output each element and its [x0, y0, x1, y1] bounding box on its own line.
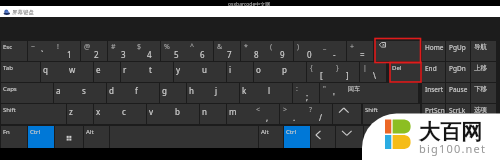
- button[interactable]: n: [200, 104, 226, 124]
- button[interactable]: 导航: [471, 41, 496, 61]
- button[interactable]: c: [120, 104, 146, 124]
- staticText: &: [217, 42, 223, 52]
- button[interactable]: Fn: [1, 126, 27, 148]
- button[interactable]: y: [174, 62, 200, 82]
- button[interactable]: ScrLk: [446, 104, 470, 124]
- button[interactable]: PgDn: [446, 62, 470, 82]
- staticText: Del: [392, 64, 402, 72]
- button[interactable]: %: [161, 41, 187, 61]
- button[interactable]: @: [81, 41, 107, 61]
- staticText: _: [323, 42, 327, 52]
- button[interactable]: Shift: [363, 104, 420, 124]
- button[interactable]: up: [333, 104, 361, 124]
- button[interactable]: End: [422, 62, 445, 82]
- button[interactable]: Alt: [259, 126, 283, 148]
- button[interactable]: {: [307, 62, 333, 82]
- staticText: h: [189, 85, 194, 96]
- button[interactable]: Caps: [1, 83, 53, 103]
- button[interactable]: _: [320, 41, 346, 61]
- staticText: osxbarcode中文网: [228, 1, 271, 8]
- button[interactable]: 上移: [471, 62, 496, 82]
- button[interactable]: *: [241, 41, 267, 61]
- staticText: ,: [266, 112, 269, 123]
- staticText: Esc: [3, 43, 13, 51]
- button[interactable]: +: [347, 41, 373, 61]
- button[interactable]: win: [55, 126, 83, 148]
- button[interactable]: #: [108, 41, 134, 61]
- button[interactable]: x: [94, 104, 120, 124]
- staticText: `: [41, 49, 44, 60]
- staticText: Insert: [425, 85, 444, 94]
- button[interactable]: &: [214, 41, 240, 61]
- button[interactable]: 回车: [346, 83, 418, 103]
- button[interactable]: left: [311, 126, 335, 148]
- button[interactable]: Alt: [84, 126, 109, 148]
- button[interactable]: m: [227, 104, 253, 124]
- button[interactable]: |: [360, 62, 386, 82]
- staticText: b: [175, 106, 180, 117]
- button[interactable]: l: [266, 83, 292, 103]
- button[interactable]: z: [67, 104, 93, 124]
- button[interactable]: u: [200, 62, 226, 82]
- button[interactable]: :: [293, 83, 319, 103]
- button[interactable]: t: [147, 62, 173, 82]
- button[interactable]: v: [147, 104, 173, 124]
- staticText: s: [82, 85, 86, 96]
- button[interactable]: ^: [187, 41, 213, 61]
- button[interactable]: Home: [422, 41, 445, 61]
- button[interactable]: down: [336, 126, 363, 148]
- button[interactable]: a: [54, 83, 80, 103]
- button[interactable]: b: [173, 104, 199, 124]
- staticText: Ctrl: [286, 128, 296, 136]
- button[interactable]: $: [134, 41, 160, 61]
- button[interactable]: g: [160, 83, 186, 103]
- button[interactable]: Shift: [1, 104, 66, 124]
- button[interactable]: }: [333, 62, 359, 82]
- staticText: u: [202, 64, 207, 75]
- button[interactable]: PrtScn: [422, 104, 445, 124]
- button[interactable]: o: [254, 62, 280, 82]
- button[interactable]: s: [80, 83, 106, 103]
- button[interactable]: Ctrl: [284, 126, 310, 148]
- button[interactable]: e: [94, 62, 120, 82]
- button[interactable]: q: [41, 62, 67, 82]
- button[interactable]: ?: [306, 104, 332, 124]
- button[interactable]: Esc: [1, 41, 27, 61]
- button[interactable]: ~: [28, 41, 54, 61]
- button[interactable]: backspace: [375, 41, 420, 61]
- staticText: x: [96, 106, 101, 117]
- staticText: z: [69, 106, 73, 117]
- button[interactable]: Ctrl: [28, 126, 54, 148]
- button[interactable]: Del: [390, 62, 420, 82]
- button[interactable]: d: [107, 83, 133, 103]
- button[interactable]: k: [240, 83, 266, 103]
- button[interactable]: right: [364, 126, 390, 148]
- staticText: k: [242, 85, 247, 96]
- button[interactable]: j: [213, 83, 239, 103]
- staticText: 2: [94, 49, 99, 60]
- button[interactable]: 选项: [471, 104, 496, 124]
- button[interactable]: Tab: [1, 62, 40, 82]
- staticText: }: [336, 63, 339, 73]
- button[interactable]: PgUp: [446, 41, 470, 61]
- button[interactable]: Insert: [422, 83, 445, 103]
- button[interactable]: (: [267, 41, 293, 61]
- button[interactable]: r: [121, 62, 147, 82]
- button[interactable]: ": [320, 83, 346, 103]
- button[interactable]: <: [253, 104, 279, 124]
- button[interactable]: Pause: [446, 83, 470, 103]
- button[interactable]: ): [294, 41, 320, 61]
- button[interactable]: 下移: [471, 83, 496, 103]
- button[interactable]: !: [54, 41, 80, 61]
- button[interactable]: w: [67, 62, 93, 82]
- button[interactable]: h: [187, 83, 213, 103]
- staticText: %: [164, 42, 170, 52]
- staticText: Shift: [365, 106, 378, 114]
- button[interactable]: i: [227, 62, 253, 82]
- button[interactable]: p: [280, 62, 306, 82]
- staticText: big100.net: [419, 141, 487, 156]
- button[interactable]: f: [133, 83, 159, 103]
- staticText: ;: [306, 91, 309, 102]
- button[interactable]: >: [280, 104, 306, 124]
